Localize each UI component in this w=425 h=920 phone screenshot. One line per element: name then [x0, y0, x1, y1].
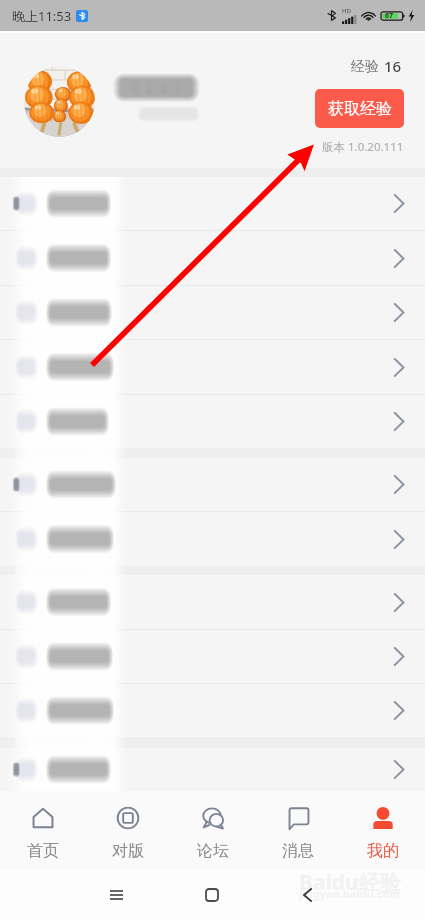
staticText: 获取经验: [328, 99, 392, 119]
staticText: jingyan.baidu.com: [299, 886, 401, 901]
staticText: 我的: [367, 841, 399, 861]
staticText: 消息: [282, 841, 314, 861]
staticText: 首页: [27, 841, 59, 861]
staticText: 晚上11:53: [12, 7, 72, 25]
button[interactable]: [0, 286, 425, 339]
other: Menu: [110, 890, 123, 900]
button[interactable]: 我的: [340, 794, 425, 873]
button[interactable]: [0, 748, 425, 791]
other: Home: [206, 889, 218, 901]
button[interactable]: [0, 512, 425, 566]
button[interactable]: [0, 177, 425, 230]
button[interactable]: 消息: [255, 794, 340, 873]
button[interactable]: 对版: [85, 794, 170, 873]
button[interactable]: [0, 231, 425, 285]
staticText: 经验: [351, 58, 379, 76]
button[interactable]: [0, 458, 425, 511]
staticText: HD: [342, 7, 351, 15]
button[interactable]: [0, 630, 425, 683]
staticText: 16: [384, 56, 402, 76]
staticText: 论坛: [197, 841, 229, 861]
button[interactable]: [0, 684, 425, 737]
staticText: 对版: [112, 841, 144, 861]
staticText: 版本 1.0.20.111: [322, 139, 404, 155]
button[interactable]: 获取经验: [315, 89, 404, 128]
button[interactable]: [0, 340, 425, 394]
button[interactable]: [0, 395, 425, 448]
button[interactable]: [0, 575, 425, 629]
staticText: Baidu经验: [299, 868, 401, 897]
button[interactable]: 论坛: [170, 794, 255, 873]
button[interactable]: 首页: [0, 794, 85, 873]
other: Back: [304, 889, 311, 901]
staticText: 67: [385, 11, 394, 21]
